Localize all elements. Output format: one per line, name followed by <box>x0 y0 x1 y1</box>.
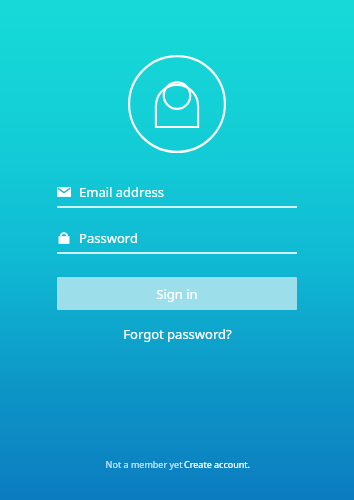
button[interactable]: Sign in <box>57 277 297 310</box>
staticText: Forgot password? <box>123 325 232 343</box>
staticText: Email address <box>79 183 164 201</box>
button[interactable]: Email address <box>57 183 297 208</box>
button[interactable]: Not a member yet <box>96 454 258 474</box>
staticText: Not a member yet <box>104 458 184 470</box>
button[interactable]: Password <box>57 229 297 254</box>
staticText: Password <box>79 229 138 247</box>
other: Profile avatar <box>128 55 226 153</box>
button[interactable]: Forgot password? <box>113 322 242 346</box>
staticText: Sign in <box>156 285 198 303</box>
staticText: Create account. <box>184 458 250 470</box>
